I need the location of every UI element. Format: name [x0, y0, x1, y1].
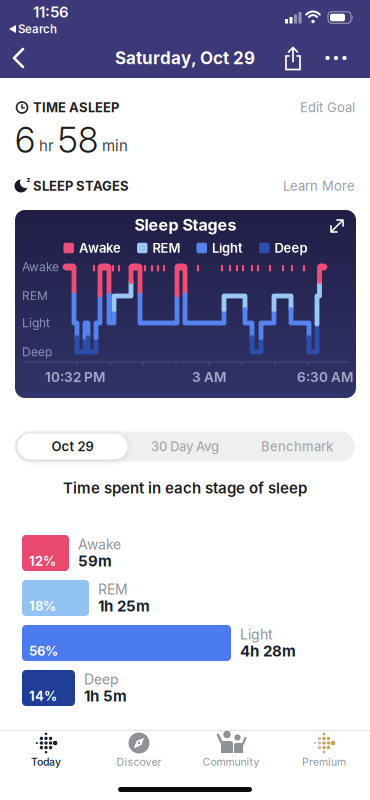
staticText: Sleep Stages	[134, 216, 236, 234]
staticText: z	[26, 175, 30, 184]
staticText: Deep	[274, 240, 307, 256]
staticText: Awake	[22, 260, 59, 274]
staticText: Saturday, Oct 29	[115, 48, 255, 68]
staticText: Premium	[302, 756, 346, 768]
staticText: 1h 5m	[84, 687, 127, 705]
staticText: Edit Goal	[300, 100, 355, 115]
staticText: Deep	[84, 671, 119, 688]
staticText: 10:32 PM	[45, 369, 105, 385]
staticText: Light	[22, 316, 50, 330]
staticText: Benchmark	[261, 439, 333, 454]
staticText: Awake	[78, 536, 121, 553]
staticText: TIME ASLEEP	[33, 100, 119, 115]
staticText: Search	[18, 22, 57, 36]
staticText: 58	[58, 119, 98, 161]
staticText: 4h 28m	[240, 642, 296, 660]
staticText: 59m	[78, 552, 112, 570]
staticText: Awake	[79, 240, 121, 256]
staticText: Deep	[22, 345, 52, 359]
staticText: Light	[212, 240, 243, 256]
staticText: 30 Day Avg	[151, 439, 219, 454]
staticText: REM	[152, 240, 180, 256]
staticText: 56%	[29, 643, 58, 659]
staticText: 6	[15, 119, 35, 161]
staticText: SLEEP STAGES	[33, 178, 129, 194]
staticText: 6:30 AM	[297, 369, 353, 385]
staticText: 1h 25m	[98, 597, 150, 615]
staticText: Today	[31, 756, 61, 768]
staticText: 14%	[29, 688, 57, 704]
staticText: min	[102, 137, 128, 155]
staticText: hr	[39, 137, 54, 155]
staticText: Learn More	[283, 178, 355, 194]
staticText: REM	[22, 289, 48, 303]
staticText: Oct 29	[51, 439, 93, 454]
staticText: REM	[98, 581, 128, 598]
staticText: 3 AM	[192, 369, 226, 385]
staticText: Community	[202, 756, 259, 768]
staticText: Time spent in each stage of sleep	[63, 479, 307, 497]
staticText: 18%	[29, 598, 56, 614]
staticText: 11:56	[33, 3, 69, 21]
staticText: Light	[240, 626, 273, 643]
staticText: Discover	[116, 756, 161, 768]
staticText: 12%	[29, 553, 56, 569]
